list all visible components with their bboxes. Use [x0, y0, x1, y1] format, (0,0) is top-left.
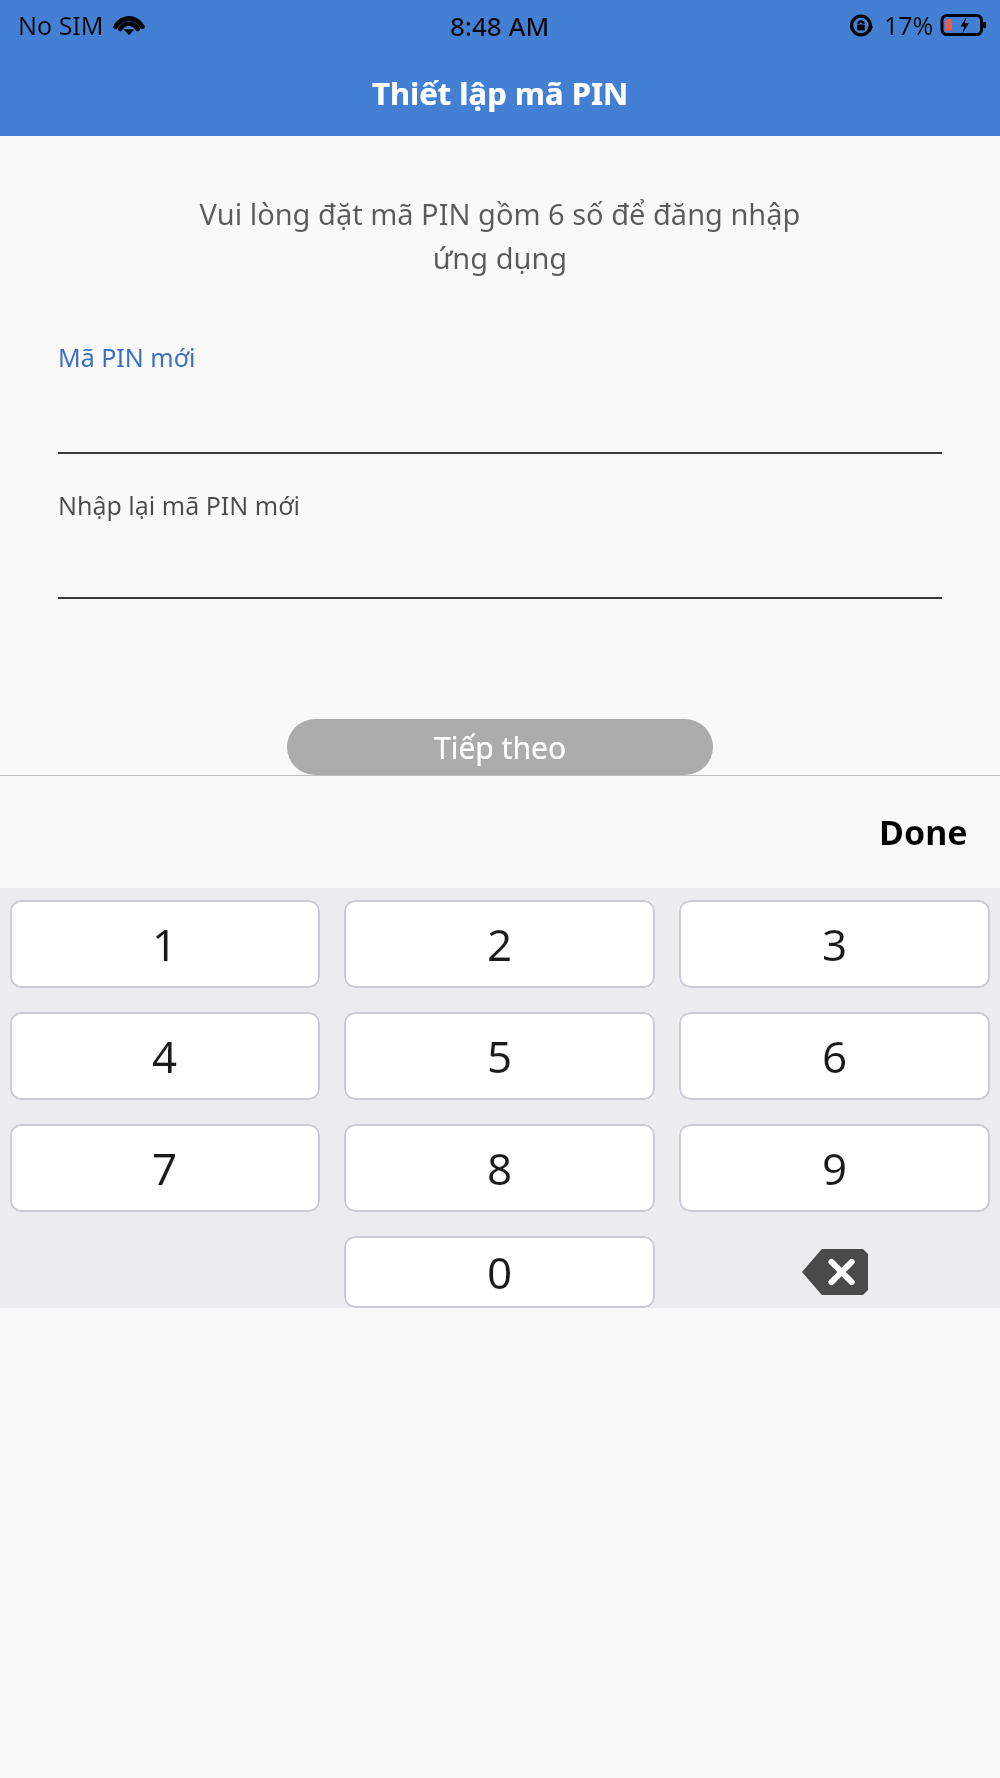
staticText: Nhập lại mã PIN mới	[58, 488, 301, 522]
button[interactable]: Mã PIN mới	[58, 340, 942, 454]
button[interactable]: 1	[10, 900, 320, 988]
staticText: 8	[487, 1138, 513, 1198]
button[interactable]: Nhập lại mã PIN mới	[58, 488, 942, 599]
staticText: 3	[822, 914, 848, 974]
button[interactable]: 4	[10, 1012, 320, 1100]
staticText: 6	[822, 1026, 848, 1086]
button[interactable]: 9	[679, 1124, 990, 1212]
staticText: Thiết lập mã PIN	[372, 72, 629, 114]
staticText: 8:48 AM	[450, 8, 550, 43]
staticText: Done	[879, 809, 968, 855]
staticText: Mã PIN mới	[58, 340, 196, 374]
staticText: Tiếp theo	[434, 727, 567, 768]
staticText: 5	[487, 1026, 513, 1086]
staticText: 9	[822, 1138, 848, 1198]
staticText: 1	[152, 914, 178, 974]
button[interactable]: 2	[344, 900, 655, 988]
staticText: 7	[152, 1138, 178, 1198]
button[interactable]: 5	[344, 1012, 655, 1100]
button[interactable]: Backspace	[679, 1236, 990, 1308]
button[interactable]: 3	[679, 900, 990, 988]
staticText: Vui lòng đặt mã PIN gồm 6 số để đăng nhậ…	[60, 194, 940, 277]
button[interactable]: 0	[344, 1236, 655, 1308]
staticText: 0	[487, 1242, 513, 1302]
button[interactable]: Tiếp theo	[287, 719, 713, 775]
button[interactable]: 8	[344, 1124, 655, 1212]
staticText: No SIM	[18, 8, 104, 42]
staticText: 17%	[884, 8, 934, 42]
button[interactable]: 6	[679, 1012, 990, 1100]
staticText: 4	[152, 1026, 178, 1086]
staticText: 2	[487, 914, 513, 974]
button[interactable]: 7	[10, 1124, 320, 1212]
button[interactable]: Done	[847, 793, 1000, 871]
